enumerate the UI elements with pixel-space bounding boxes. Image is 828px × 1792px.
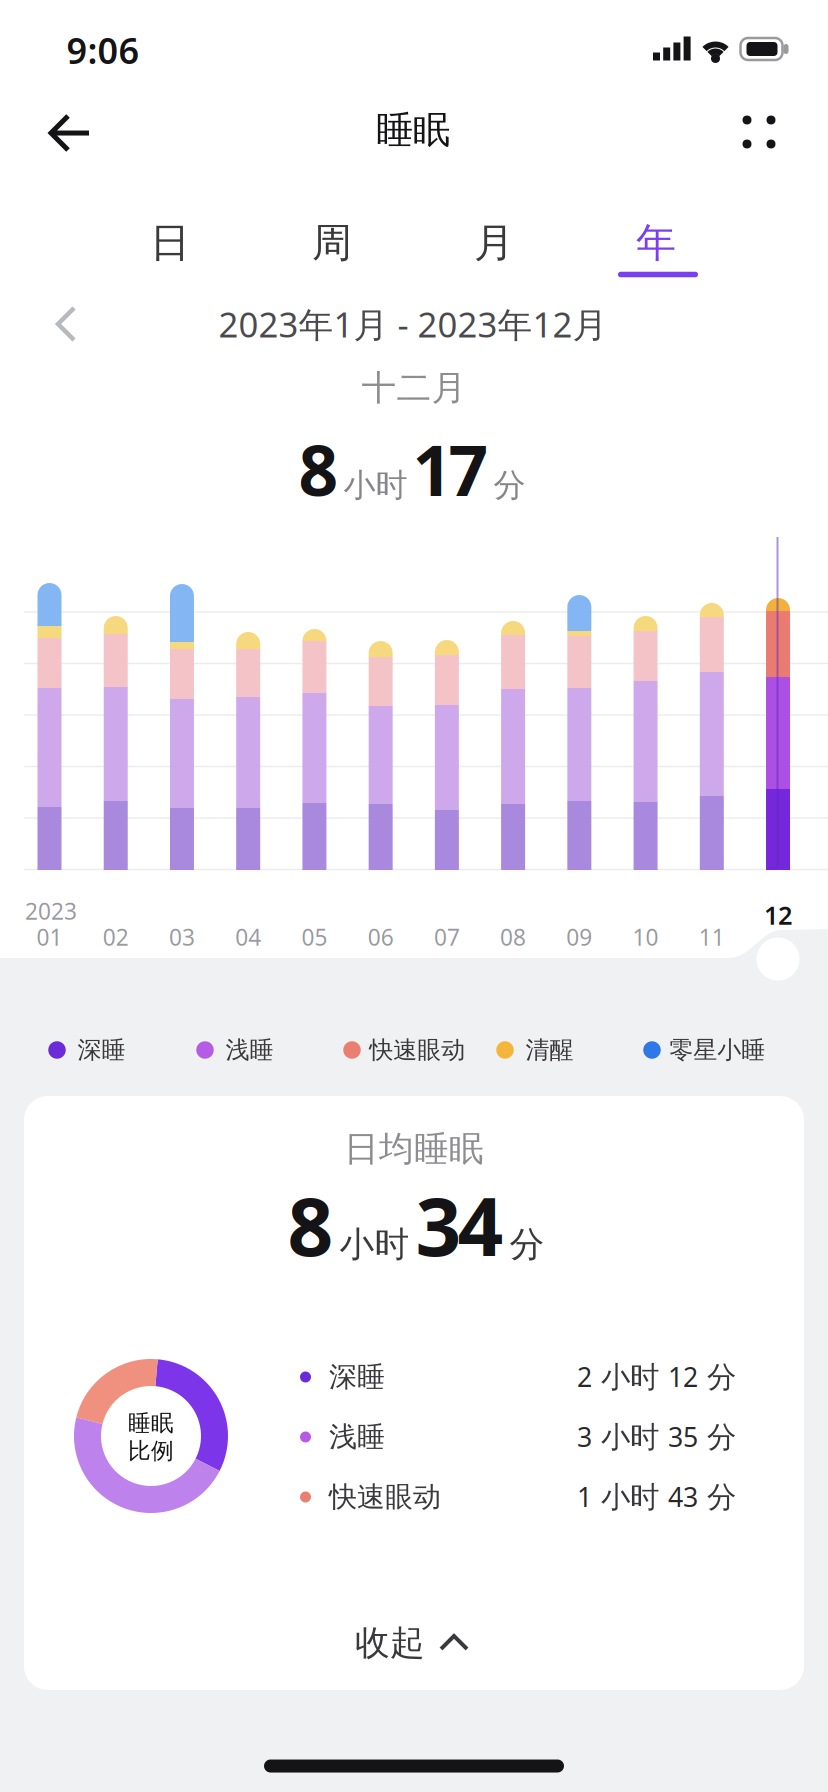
staticText: 睡眠	[376, 107, 450, 153]
button[interactable]: 更多	[737, 110, 781, 154]
staticText: 8	[298, 423, 338, 515]
staticText: 17	[412, 423, 488, 515]
staticText: 分	[509, 1223, 544, 1266]
staticText: 深睡	[78, 1035, 126, 1065]
staticText: 12	[764, 898, 792, 932]
button[interactable]: 选择月份	[756, 937, 799, 980]
staticText: 清醒	[526, 1035, 574, 1065]
staticText: 日	[150, 218, 190, 267]
staticText: 收起	[355, 1622, 425, 1664]
staticText: 2	[577, 1359, 592, 1394]
staticText: 零星小睡	[669, 1035, 765, 1065]
staticText: 小时	[343, 466, 407, 505]
staticText: 10	[633, 922, 659, 952]
staticText: 小时	[601, 1479, 659, 1515]
staticText: 01	[36, 922, 62, 952]
staticText: 深睡	[329, 1360, 385, 1394]
staticText: 日均睡眠	[344, 1128, 484, 1170]
staticText: 09	[566, 922, 592, 952]
staticText: 十二月	[361, 367, 466, 409]
button[interactable]: 周	[272, 213, 392, 273]
staticText: 04	[235, 922, 261, 952]
staticText: 快速眼动	[369, 1035, 465, 1065]
staticText: 11	[699, 922, 725, 952]
staticText: 06	[368, 922, 394, 952]
staticText: 05	[301, 922, 327, 952]
staticText: 浅睡	[226, 1035, 274, 1065]
staticText: 浅睡	[329, 1420, 385, 1454]
staticText: 43	[668, 1479, 698, 1514]
staticText: 年	[636, 218, 676, 267]
staticText: 2023年1月 - 2023年12月	[218, 301, 607, 347]
staticText: 07	[434, 922, 460, 952]
staticText: 比例	[128, 1437, 174, 1465]
staticText: 小时	[601, 1419, 659, 1455]
staticText: 08	[500, 922, 526, 952]
button[interactable]: 日	[110, 213, 230, 273]
staticText: 小时	[339, 1223, 409, 1266]
staticText: 35	[668, 1419, 698, 1454]
button[interactable]: 年	[596, 213, 716, 273]
staticText: 02	[103, 922, 129, 952]
staticText: 2023	[25, 896, 77, 926]
staticText: 12	[668, 1359, 698, 1394]
staticText: 分	[707, 1359, 736, 1395]
button[interactable]: 返回	[41, 111, 97, 155]
staticText: 睡眠	[128, 1409, 174, 1437]
staticText: 1	[577, 1479, 592, 1514]
staticText: 3	[577, 1419, 592, 1454]
staticText: 分	[493, 466, 525, 505]
staticText: 34	[415, 1172, 503, 1278]
staticText: 9:06	[66, 26, 139, 74]
button[interactable]: 收起	[332, 1613, 492, 1673]
staticText: 月	[474, 218, 514, 267]
button[interactable]: 月	[434, 213, 554, 273]
staticText: 小时	[601, 1359, 659, 1395]
staticText: 快速眼动	[329, 1480, 441, 1514]
staticText: 周	[312, 218, 352, 267]
staticText: 分	[707, 1419, 736, 1455]
staticText: 分	[707, 1479, 736, 1515]
staticText: 8	[287, 1172, 333, 1278]
button[interactable]: 上一年	[50, 304, 90, 344]
staticText: 03	[169, 922, 195, 952]
